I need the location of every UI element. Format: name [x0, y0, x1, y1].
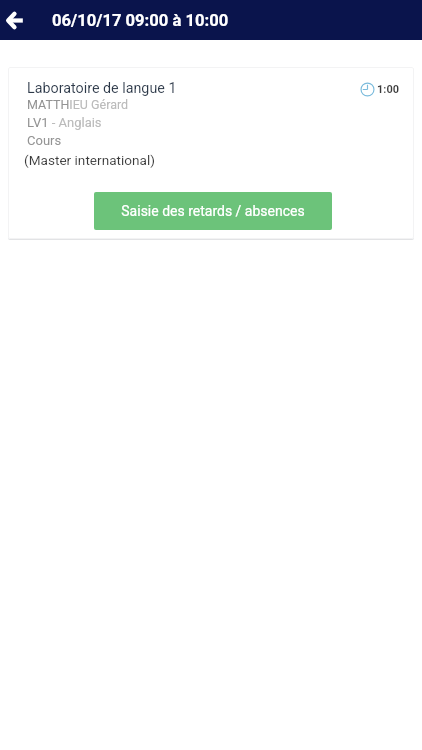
staticText: Saisie des retards / absences: [121, 203, 305, 219]
staticText: 06/10/17 09:00 à 10:00: [52, 11, 229, 30]
button[interactable]: Duration 1:00: [360, 82, 400, 97]
staticText: LV1 - Anglais: [27, 115, 102, 130]
staticText: 1:00: [377, 83, 400, 96]
button[interactable]: Saisie des retards / absences: [94, 192, 332, 230]
staticText: Laboratoire de langue 1: [27, 80, 177, 97]
staticText: Cours: [27, 133, 62, 148]
staticText: (Master international): [24, 152, 155, 168]
staticText: MATTHIEU Gérard: [27, 97, 129, 112]
button[interactable]: Back: [6, 12, 23, 29]
